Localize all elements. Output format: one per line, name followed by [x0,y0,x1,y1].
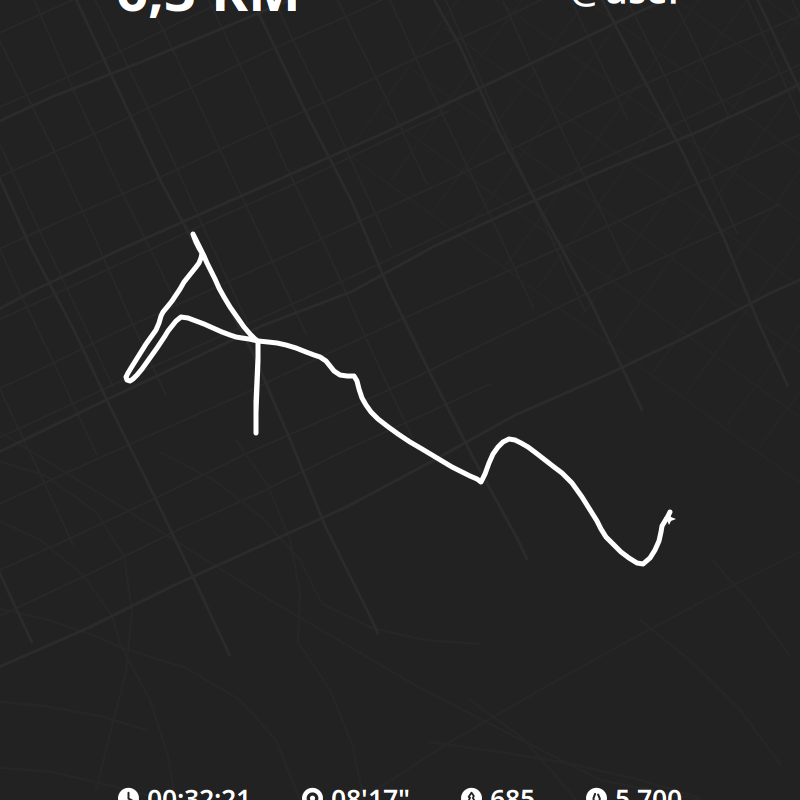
button[interactable]: Calories [461,781,535,800]
button[interactable]: 6,3 KM [116,0,301,26]
staticText: 6,3 KM [116,0,301,26]
staticText: 08'17" [331,781,410,800]
button[interactable]: Duration [118,781,251,800]
staticText: 5.700 [615,781,682,800]
staticText: 685 [490,781,535,800]
staticText: @user [570,0,684,14]
staticText: 00:32:21 [147,781,251,800]
button[interactable]: Average pace [302,781,410,800]
button[interactable]: @user [570,0,684,14]
button[interactable]: Steps [586,781,682,800]
